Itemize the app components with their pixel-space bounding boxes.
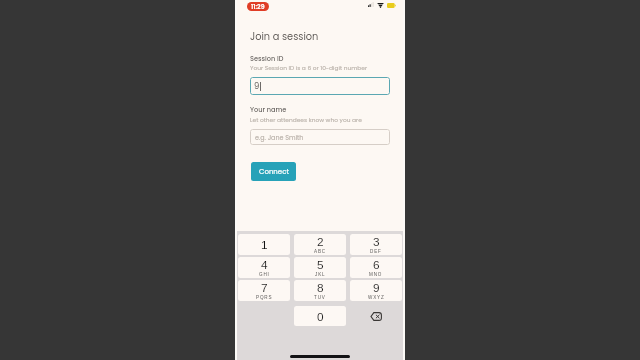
button[interactable]: Backspace bbox=[350, 306, 402, 326]
staticText: 7 bbox=[261, 281, 268, 294]
button[interactable]: 7 bbox=[238, 280, 290, 301]
staticText: PQRS bbox=[256, 295, 273, 300]
staticText: 1 bbox=[261, 238, 268, 251]
staticText: 0 bbox=[317, 310, 324, 323]
button[interactable]: 8 bbox=[294, 280, 346, 301]
staticText: Let other attendees know who you are bbox=[250, 116, 362, 124]
button[interactable]: Session ID input field bbox=[250, 77, 390, 95]
staticText: Your Session ID is a 6 or 10-digit numbe… bbox=[250, 64, 368, 72]
staticText: WXYZ bbox=[368, 295, 385, 300]
button[interactable]: 4 bbox=[238, 257, 290, 278]
staticText: 8 bbox=[317, 281, 324, 294]
other: Wi-Fi bbox=[377, 3, 384, 8]
button[interactable]: 6 bbox=[350, 257, 402, 278]
other: Battery bbox=[387, 3, 396, 8]
staticText: 4 bbox=[261, 258, 268, 271]
other: Cellular signal bbox=[368, 2, 374, 7]
staticText: 11:29 bbox=[251, 2, 265, 11]
staticText: 6 bbox=[373, 258, 380, 271]
button[interactable]: 5 bbox=[294, 257, 346, 278]
staticText: Session ID bbox=[250, 54, 284, 63]
staticText: Join a session bbox=[250, 30, 319, 44]
staticText: TUV bbox=[314, 295, 326, 300]
staticText: 2 bbox=[317, 235, 324, 248]
staticText: 3 bbox=[373, 235, 380, 248]
staticText: MNO bbox=[369, 272, 383, 277]
button[interactable]: 0 bbox=[294, 306, 346, 326]
staticText: 9 bbox=[254, 80, 260, 92]
button[interactable]: 3 bbox=[350, 234, 402, 255]
staticText: DEF bbox=[370, 249, 382, 254]
button[interactable]: 2 bbox=[294, 234, 346, 255]
staticText: Your name bbox=[250, 105, 287, 114]
button[interactable]: Connect bbox=[251, 162, 296, 181]
staticText: JKL bbox=[315, 272, 326, 277]
button[interactable]: 1 bbox=[238, 234, 290, 255]
staticText: GHI bbox=[259, 272, 270, 277]
staticText: ABC bbox=[314, 249, 326, 254]
staticText: Connect bbox=[259, 167, 289, 177]
staticText: 9 bbox=[373, 281, 380, 294]
button[interactable]: Your name input field bbox=[250, 129, 390, 145]
button[interactable]: 9 bbox=[350, 280, 402, 301]
staticText: e.g. Jane Smith bbox=[255, 133, 304, 142]
staticText: 5 bbox=[317, 258, 324, 271]
